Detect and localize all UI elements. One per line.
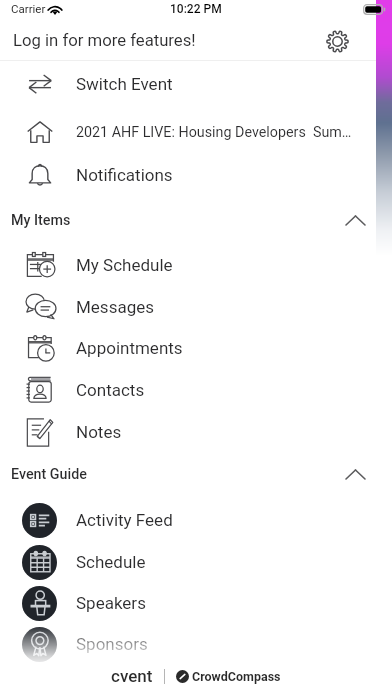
staticText: Activity Feed bbox=[76, 510, 173, 530]
button[interactable]: Speakers bbox=[0, 582, 392, 624]
button[interactable]: Switch Event bbox=[0, 63, 392, 105]
button[interactable]: Schedule bbox=[0, 541, 392, 583]
staticText: 10:22 PM bbox=[170, 2, 222, 16]
staticText: Notes bbox=[76, 422, 122, 442]
staticText: Sponsors bbox=[76, 634, 148, 654]
staticText: My Items bbox=[11, 212, 71, 229]
staticText: CrowdCompass bbox=[192, 669, 281, 684]
button[interactable]: Activity Feed bbox=[0, 499, 392, 541]
button[interactable]: 2021 AHF LIVE: Housing Developers Sum… bbox=[0, 111, 392, 153]
button[interactable]: Sponsors bbox=[0, 623, 392, 665]
button[interactable]: Event Guide bbox=[0, 452, 392, 496]
button[interactable]: Settings bbox=[322, 26, 352, 56]
button[interactable]: My Items bbox=[0, 198, 392, 242]
button[interactable]: Contacts bbox=[0, 369, 392, 411]
staticText: Notifications bbox=[76, 165, 173, 185]
staticText: My Schedule bbox=[76, 255, 173, 275]
staticText: 2021 AHF LIVE: Housing Developers Sum… bbox=[76, 124, 352, 141]
staticText: Contacts bbox=[76, 380, 145, 400]
staticText: Speakers bbox=[76, 593, 146, 613]
button[interactable]: Notifications bbox=[0, 154, 392, 196]
staticText: Event Guide bbox=[11, 466, 87, 483]
staticText: Switch Event bbox=[76, 74, 173, 94]
button[interactable]: Messages bbox=[0, 286, 392, 328]
staticText: Carrier bbox=[11, 2, 46, 15]
staticText: cvent bbox=[111, 666, 153, 686]
staticText: Schedule bbox=[76, 552, 146, 572]
button[interactable]: Appointments bbox=[0, 327, 392, 369]
staticText: Messages bbox=[76, 297, 154, 317]
button[interactable]: My Schedule bbox=[0, 244, 392, 286]
staticText: Appointments bbox=[76, 338, 183, 358]
staticText: Log in for more features! bbox=[13, 31, 196, 51]
button[interactable]: Notes bbox=[0, 411, 392, 453]
